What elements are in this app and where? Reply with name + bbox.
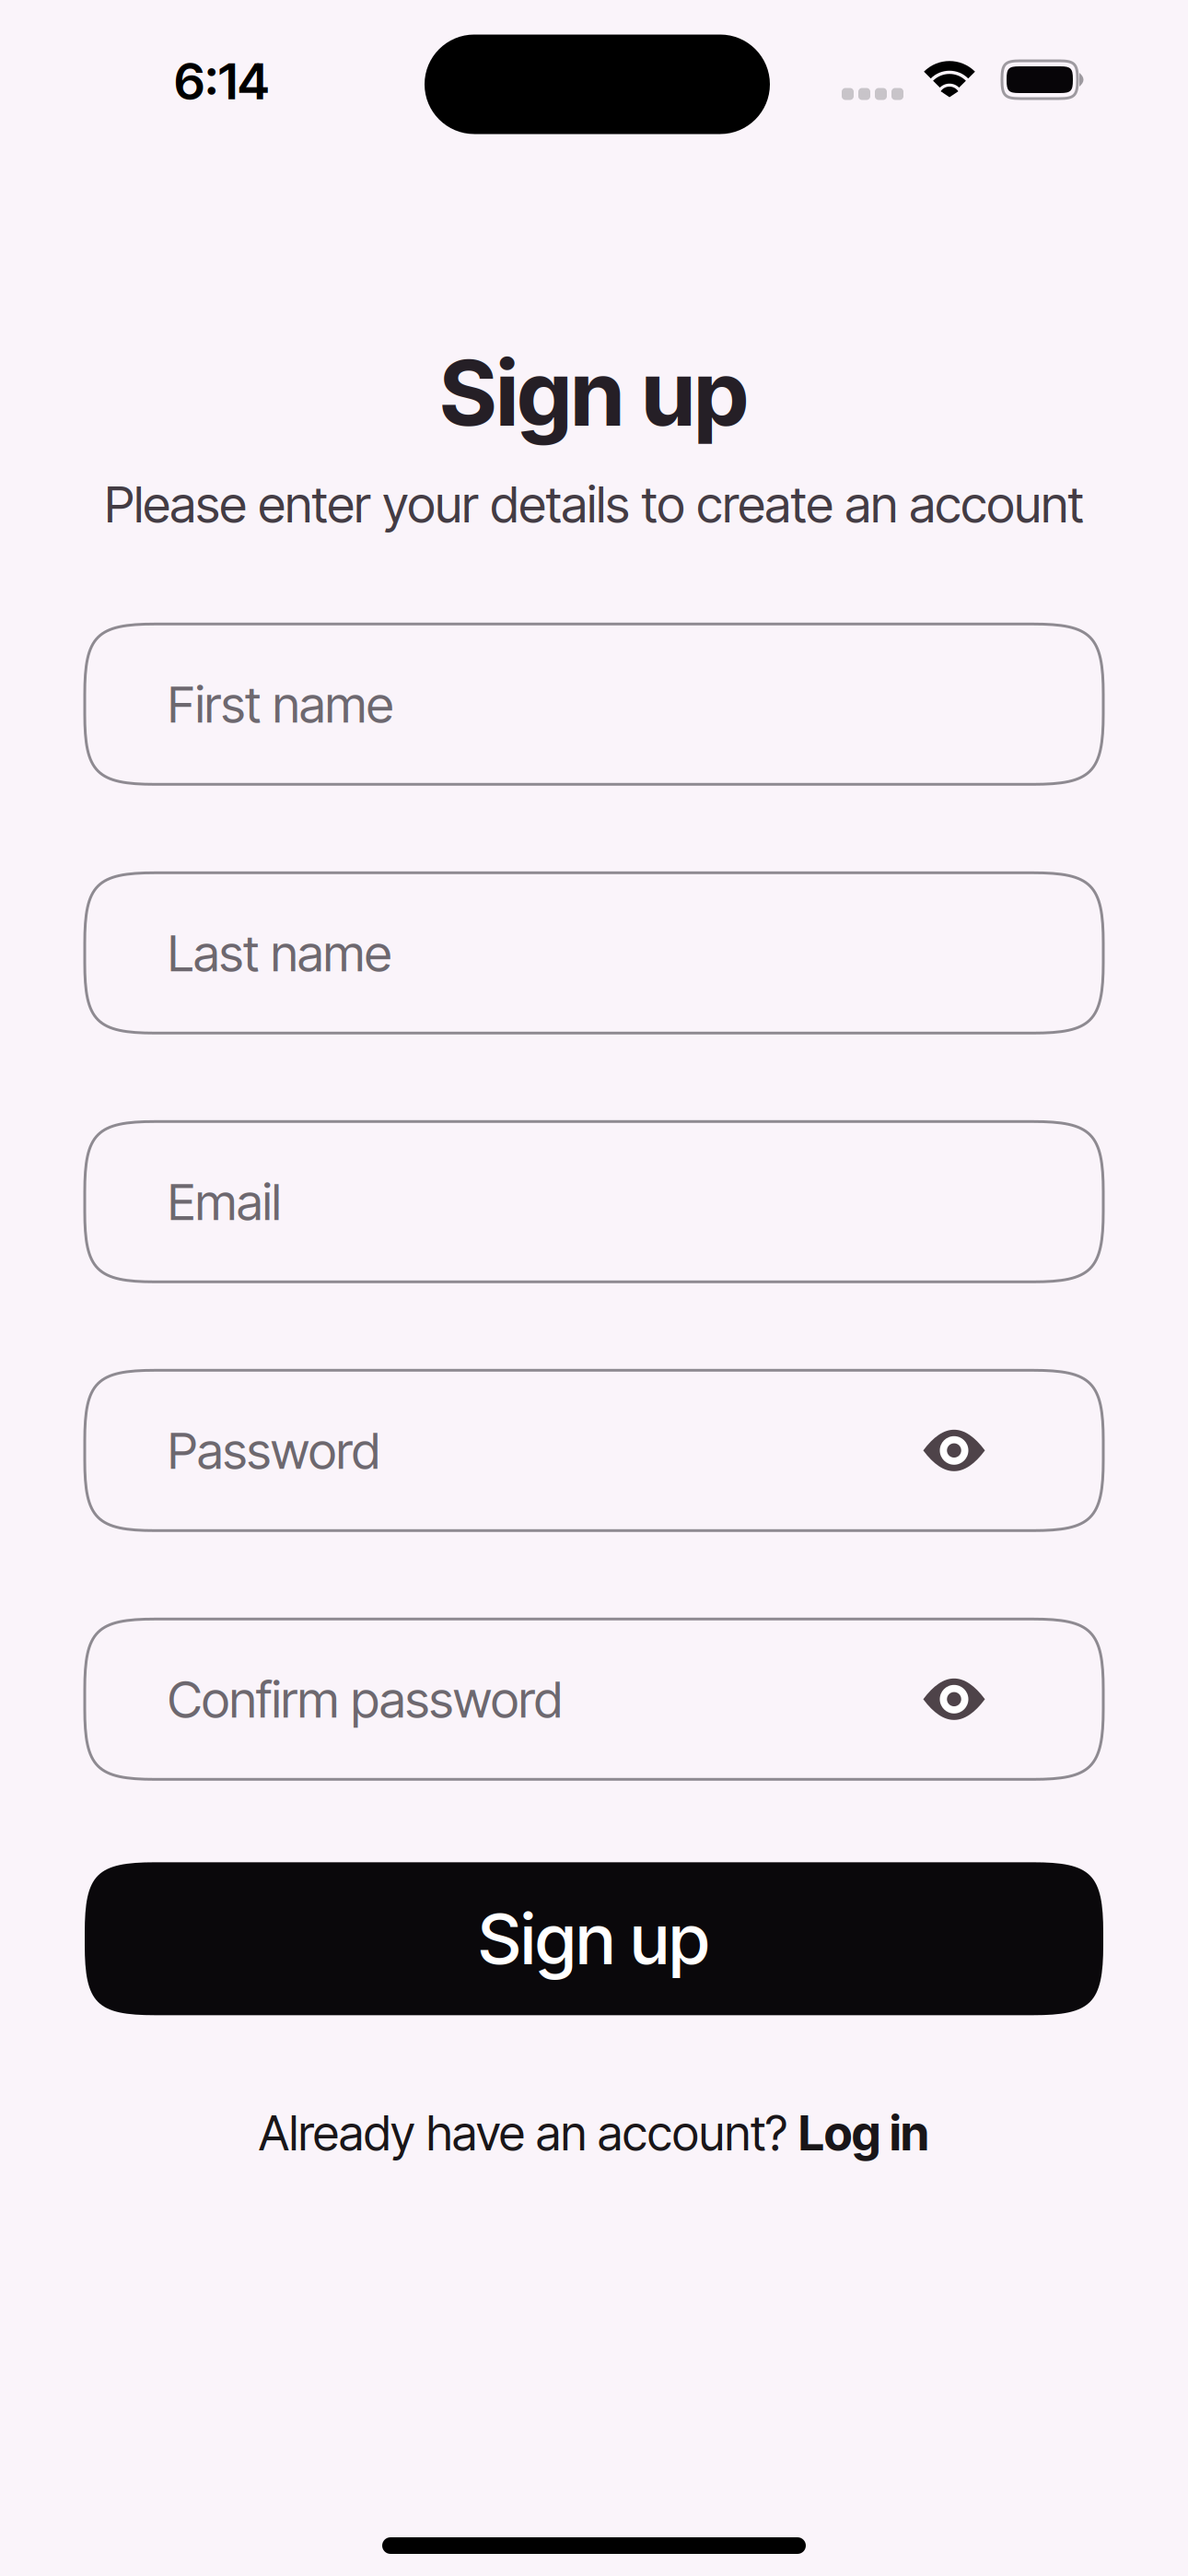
staticText: Email (168, 1172, 281, 1231)
button[interactable]: Sign up (85, 1862, 1103, 2015)
staticText: Last name (168, 923, 391, 983)
secureTextField[interactable]: Password (85, 1370, 1103, 1531)
staticText: Password (168, 1421, 380, 1480)
staticText: Please enter your details to create an a… (105, 474, 1083, 534)
button[interactable]: Show password (923, 1678, 985, 1720)
secureTextField[interactable]: Confirm password (85, 1619, 1103, 1779)
staticText: 6:14 (174, 51, 269, 111)
staticText: Confirm password (168, 1670, 563, 1729)
button[interactable]: Log in (798, 2105, 929, 2161)
staticText: Already have an account? (259, 2105, 798, 2161)
staticText: Sign up (478, 1897, 710, 1980)
staticText: First name (168, 674, 393, 734)
staticText: Sign up (440, 340, 748, 446)
staticText: Log in (798, 2105, 929, 2161)
textField[interactable]: Email (85, 1122, 1103, 1282)
button[interactable]: Show password (923, 1429, 985, 1472)
textField[interactable]: First name (85, 624, 1103, 784)
textField[interactable]: Last name (85, 873, 1103, 1033)
